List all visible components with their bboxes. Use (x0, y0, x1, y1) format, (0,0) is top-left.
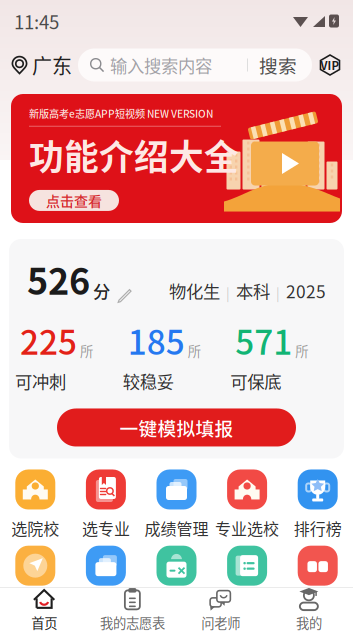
button[interactable]: 首页 (0, 583, 88, 633)
staticText: 功能介绍大全 (29, 130, 239, 180)
staticText: 输入搜索内容 (110, 52, 212, 78)
button[interactable]: 选专业 (71, 469, 141, 540)
button[interactable]: 编辑分数 (110, 288, 132, 305)
staticText: 搜索 (259, 51, 297, 78)
button[interactable]: 排行榜 (282, 469, 353, 540)
staticText: 526 (27, 253, 90, 305)
staticText: 225 (20, 316, 77, 364)
button[interactable]: 新版高考e志愿APP短视频 NEW VERSION (11, 94, 342, 223)
staticText: 可保底 (230, 368, 281, 393)
button[interactable]: 成绩管理 (141, 469, 212, 540)
staticText: 广东 (32, 50, 72, 79)
staticText: 问老师 (201, 613, 240, 632)
staticText: | (226, 283, 230, 302)
button[interactable]: 广东 (0, 50, 78, 79)
staticText: 成绩管理 (144, 516, 208, 540)
staticText: 点击查看 (46, 190, 102, 211)
staticText: 新版高考e志愿APP短视频 NEW VERSION (29, 106, 213, 121)
staticText: 571 (235, 316, 292, 364)
staticText: 我的 (296, 613, 322, 632)
staticText: 一键模拟填报 (119, 414, 233, 441)
button[interactable]: 功能 (282, 546, 353, 586)
staticText: | (276, 283, 280, 302)
button[interactable]: 功能 (71, 546, 141, 586)
button[interactable]: 问老师 (176, 583, 265, 633)
staticText: 较稳妥 (123, 368, 174, 393)
button[interactable]: 功能 (141, 546, 212, 586)
staticText: 本科 (236, 278, 270, 303)
staticText: 排行榜 (294, 516, 342, 540)
staticText: 我的志愿表 (100, 613, 165, 632)
staticText: 物化生 (169, 278, 220, 303)
button[interactable]: 选院校 (0, 469, 71, 540)
staticText: 所 (80, 341, 93, 360)
staticText: 分 (93, 278, 110, 303)
button[interactable]: 输入搜索内容 (78, 48, 312, 81)
staticText: 首页 (31, 613, 57, 632)
staticText: 185 (128, 316, 185, 364)
staticText: 选专业 (82, 516, 130, 540)
staticText: 所 (188, 341, 201, 360)
staticText: 所 (295, 341, 308, 360)
staticText: VIP (320, 57, 339, 73)
staticText: 可冲刺 (15, 368, 66, 393)
staticText: 选院校 (11, 516, 59, 540)
staticText: 专业选校 (215, 516, 279, 540)
button[interactable]: 功能 (0, 546, 71, 586)
button[interactable]: 点击查看 (29, 190, 119, 211)
staticText: 2025 (286, 278, 326, 303)
button[interactable]: 一键模拟填报 (57, 408, 296, 446)
button[interactable]: VIP (312, 53, 348, 77)
staticText: 11:45 (14, 7, 59, 34)
button[interactable]: 功能 (212, 546, 282, 586)
button[interactable]: 专业选校 (212, 469, 282, 540)
button[interactable]: 我的 (265, 583, 353, 633)
button[interactable]: 我的志愿表 (88, 583, 176, 633)
